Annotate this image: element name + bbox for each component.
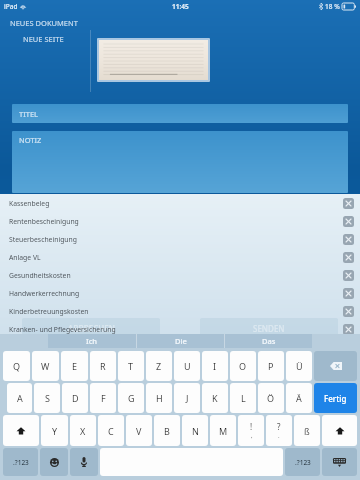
- button[interactable]: !: [238, 415, 264, 446]
- button[interactable]: R: [90, 351, 116, 381]
- staticText: SENDEN: [253, 323, 285, 334]
- button[interactable]: Remove Kassenbeleg: [343, 198, 354, 209]
- staticText: Gesundheitskosten: [9, 271, 71, 280]
- button[interactable]: .?123: [285, 448, 320, 476]
- button[interactable]: Handwerkerrechnung: [0, 284, 360, 302]
- staticText: ?: [277, 421, 281, 432]
- button[interactable]: Ö: [258, 383, 284, 413]
- staticText: Z: [156, 360, 162, 372]
- button[interactable]: NEUE SEITE: [21, 32, 66, 46]
- staticText: W: [41, 360, 50, 372]
- staticText: T: [128, 360, 134, 372]
- staticText: Y: [52, 425, 58, 437]
- staticText: NEUES DOKUMENT: [10, 18, 78, 28]
- button[interactable]: Rentenbescheinigung: [0, 212, 360, 230]
- staticText: ABBRECHEN: [68, 323, 115, 334]
- button[interactable]: Kassenbeleg: [0, 194, 360, 212]
- button[interactable]: Hide keyboard: [322, 448, 357, 476]
- button[interactable]: Dictate: [70, 448, 98, 476]
- button[interactable]: Die: [137, 334, 224, 348]
- staticText: M: [219, 425, 228, 437]
- staticText: Q: [13, 360, 21, 372]
- button[interactable]: Remove Kranken- und Pflegeversicherung: [343, 324, 354, 335]
- button[interactable]: Q: [3, 351, 30, 381]
- button[interactable]: V: [126, 415, 152, 446]
- button[interactable]: M: [210, 415, 236, 446]
- button[interactable]: Steuerbescheinigung: [0, 230, 360, 248]
- staticText: .?123: [295, 458, 311, 467]
- staticText: O: [239, 360, 247, 372]
- button[interactable]: Ä: [286, 383, 312, 413]
- button[interactable]: W: [32, 351, 59, 381]
- button[interactable]: Remove Kinderbetreuungskosten: [343, 306, 354, 317]
- button[interactable]: Remove Steuerbescheinigung: [343, 234, 354, 245]
- button[interactable]: NOTIZ: [12, 131, 348, 193]
- button[interactable]: Remove Handwerkerrechnung: [343, 288, 354, 299]
- staticText: Ö: [267, 392, 275, 404]
- button[interactable]: .?123: [3, 448, 38, 476]
- button[interactable]: K: [202, 383, 228, 413]
- staticText: H: [156, 392, 163, 404]
- button[interactable]: Ü: [286, 351, 312, 381]
- button[interactable]: ?: [266, 415, 292, 446]
- staticText: K: [212, 392, 218, 404]
- button[interactable]: Y: [41, 415, 68, 446]
- staticText: V: [136, 425, 142, 437]
- staticText: Handwerkerrechnung: [9, 289, 80, 298]
- button[interactable]: L: [230, 383, 256, 413]
- button[interactable]: Gesundheitskosten: [0, 266, 360, 284]
- staticText: 11:45: [172, 2, 189, 11]
- staticText: NEUE SEITE: [23, 34, 64, 44]
- button[interactable]: A: [7, 383, 32, 413]
- button[interactable]: SENDEN: [200, 318, 338, 338]
- button[interactable]: E: [61, 351, 88, 381]
- button[interactable]: Ich: [48, 334, 136, 348]
- button[interactable]: Kranken- und Pflegeversicherung: [0, 320, 360, 338]
- button[interactable]: ß: [294, 415, 320, 446]
- staticText: iPad: [4, 2, 18, 11]
- staticText: B: [164, 425, 170, 437]
- button[interactable]: N: [182, 415, 208, 446]
- button[interactable]: Remove Gesundheitskosten: [343, 270, 354, 281]
- staticText: L: [241, 392, 246, 404]
- button[interactable]: B: [154, 415, 180, 446]
- button[interactable]: Shift: [3, 415, 39, 446]
- button[interactable]: ABBRECHEN: [22, 318, 160, 338]
- staticText: Die: [175, 336, 187, 346]
- button[interactable]: U: [174, 351, 200, 381]
- button[interactable]: Shift: [322, 415, 357, 446]
- button[interactable]: G: [118, 383, 144, 413]
- button[interactable]: Backspace: [314, 351, 357, 381]
- button[interactable]: P: [258, 351, 284, 381]
- button[interactable]: X: [70, 415, 96, 446]
- staticText: J: [186, 392, 189, 404]
- button[interactable]: C: [98, 415, 124, 446]
- button[interactable]: T: [118, 351, 144, 381]
- button[interactable]: I: [202, 351, 228, 381]
- button[interactable]: [99, 40, 208, 80]
- staticText: C: [108, 425, 114, 437]
- staticText: D: [72, 392, 79, 404]
- staticText: 18 %: [325, 2, 340, 11]
- button[interactable]: Remove Anlage VL: [343, 252, 354, 263]
- staticText: .?123: [13, 458, 29, 467]
- staticText: ß: [304, 425, 310, 437]
- button[interactable]: Kinderbetreuungskosten: [0, 302, 360, 320]
- button[interactable]: S: [34, 383, 60, 413]
- button[interactable]: H: [146, 383, 172, 413]
- button[interactable]: Z: [146, 351, 172, 381]
- button[interactable]: D: [62, 383, 88, 413]
- button[interactable]: Das: [225, 334, 312, 348]
- staticText: U: [184, 360, 191, 372]
- button[interactable]: O: [230, 351, 256, 381]
- button[interactable]: J: [174, 383, 200, 413]
- staticText: N: [192, 425, 199, 437]
- button[interactable]: Emoji: [40, 448, 68, 476]
- staticText: S: [45, 392, 50, 404]
- button[interactable]: TITEL: [12, 104, 348, 123]
- button[interactable]: Anlage VL: [0, 248, 360, 266]
- button[interactable]: Fertig: [314, 383, 357, 413]
- button[interactable]: Remove Rentenbescheinigung: [343, 216, 354, 227]
- button[interactable]: F: [90, 383, 116, 413]
